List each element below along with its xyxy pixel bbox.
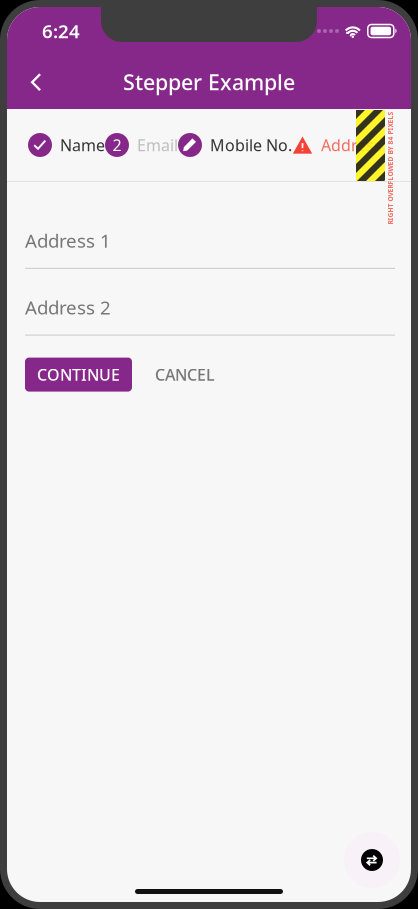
button[interactable]: CONTINUE <box>25 358 132 392</box>
button[interactable]: Toggle debug paint <box>344 832 400 888</box>
button[interactable]: 2 <box>105 109 178 181</box>
staticText: Name <box>60 134 105 156</box>
staticText: CANCEL <box>155 364 215 385</box>
staticText: RIGHT OVERFLOWED BY 84 PIXELS <box>334 164 418 172</box>
staticText: 6:24 <box>42 19 80 43</box>
button[interactable]: Name <box>28 109 105 181</box>
staticText: 2 <box>112 134 121 156</box>
button[interactable]: Mobile No. <box>178 109 292 181</box>
button[interactable]: CANCEL <box>146 358 224 392</box>
button[interactable]: Back <box>12 58 60 106</box>
staticText: CONTINUE <box>37 364 120 385</box>
staticText: Address 1 <box>25 228 111 253</box>
staticText: Address 2 <box>25 295 111 320</box>
staticText: Mobile No. <box>210 134 292 156</box>
button[interactable]: Address <box>292 109 382 181</box>
staticText: Address <box>321 134 382 156</box>
staticText: Email <box>137 134 178 156</box>
staticText: Stepper Example <box>123 68 295 96</box>
